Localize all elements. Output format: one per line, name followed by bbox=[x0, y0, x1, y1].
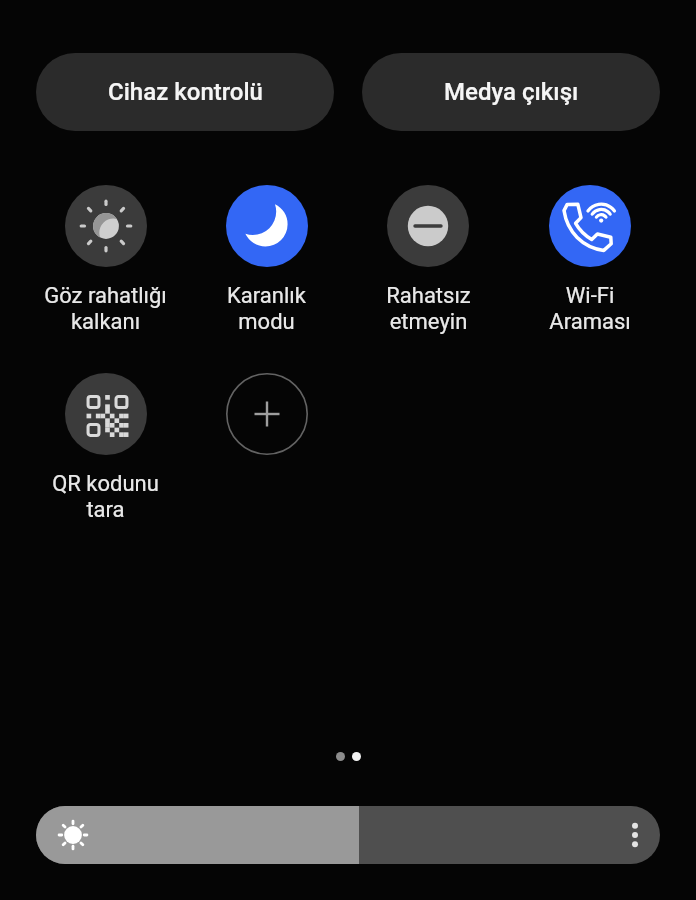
button[interactable]: Karanlık modu bbox=[186, 185, 347, 335]
staticText: Medya çıkışı bbox=[444, 78, 579, 106]
button[interactable]: Göz rahatlığı kalkanı bbox=[25, 185, 186, 335]
staticText: QR kodunu tara bbox=[52, 471, 159, 523]
button[interactable]: Wi-Fi Araması bbox=[509, 185, 671, 335]
staticText: Wi-Fi Araması bbox=[549, 283, 631, 335]
staticText: Karanlık modu bbox=[227, 283, 306, 335]
staticText: Cihaz kontrolü bbox=[108, 78, 263, 106]
button[interactable]: Brightness bbox=[36, 806, 660, 864]
button[interactable]: Add tile bbox=[186, 373, 347, 455]
button[interactable]: Cihaz kontrolü bbox=[36, 53, 334, 131]
button[interactable]: Medya çıkışı bbox=[362, 53, 660, 131]
staticText: Rahatsız etmeyin bbox=[386, 283, 471, 335]
staticText: Göz rahatlığı kalkanı bbox=[44, 283, 167, 335]
button[interactable]: QR kodunu tara bbox=[25, 373, 186, 523]
button[interactable]: Rahatsız etmeyin bbox=[347, 185, 509, 335]
